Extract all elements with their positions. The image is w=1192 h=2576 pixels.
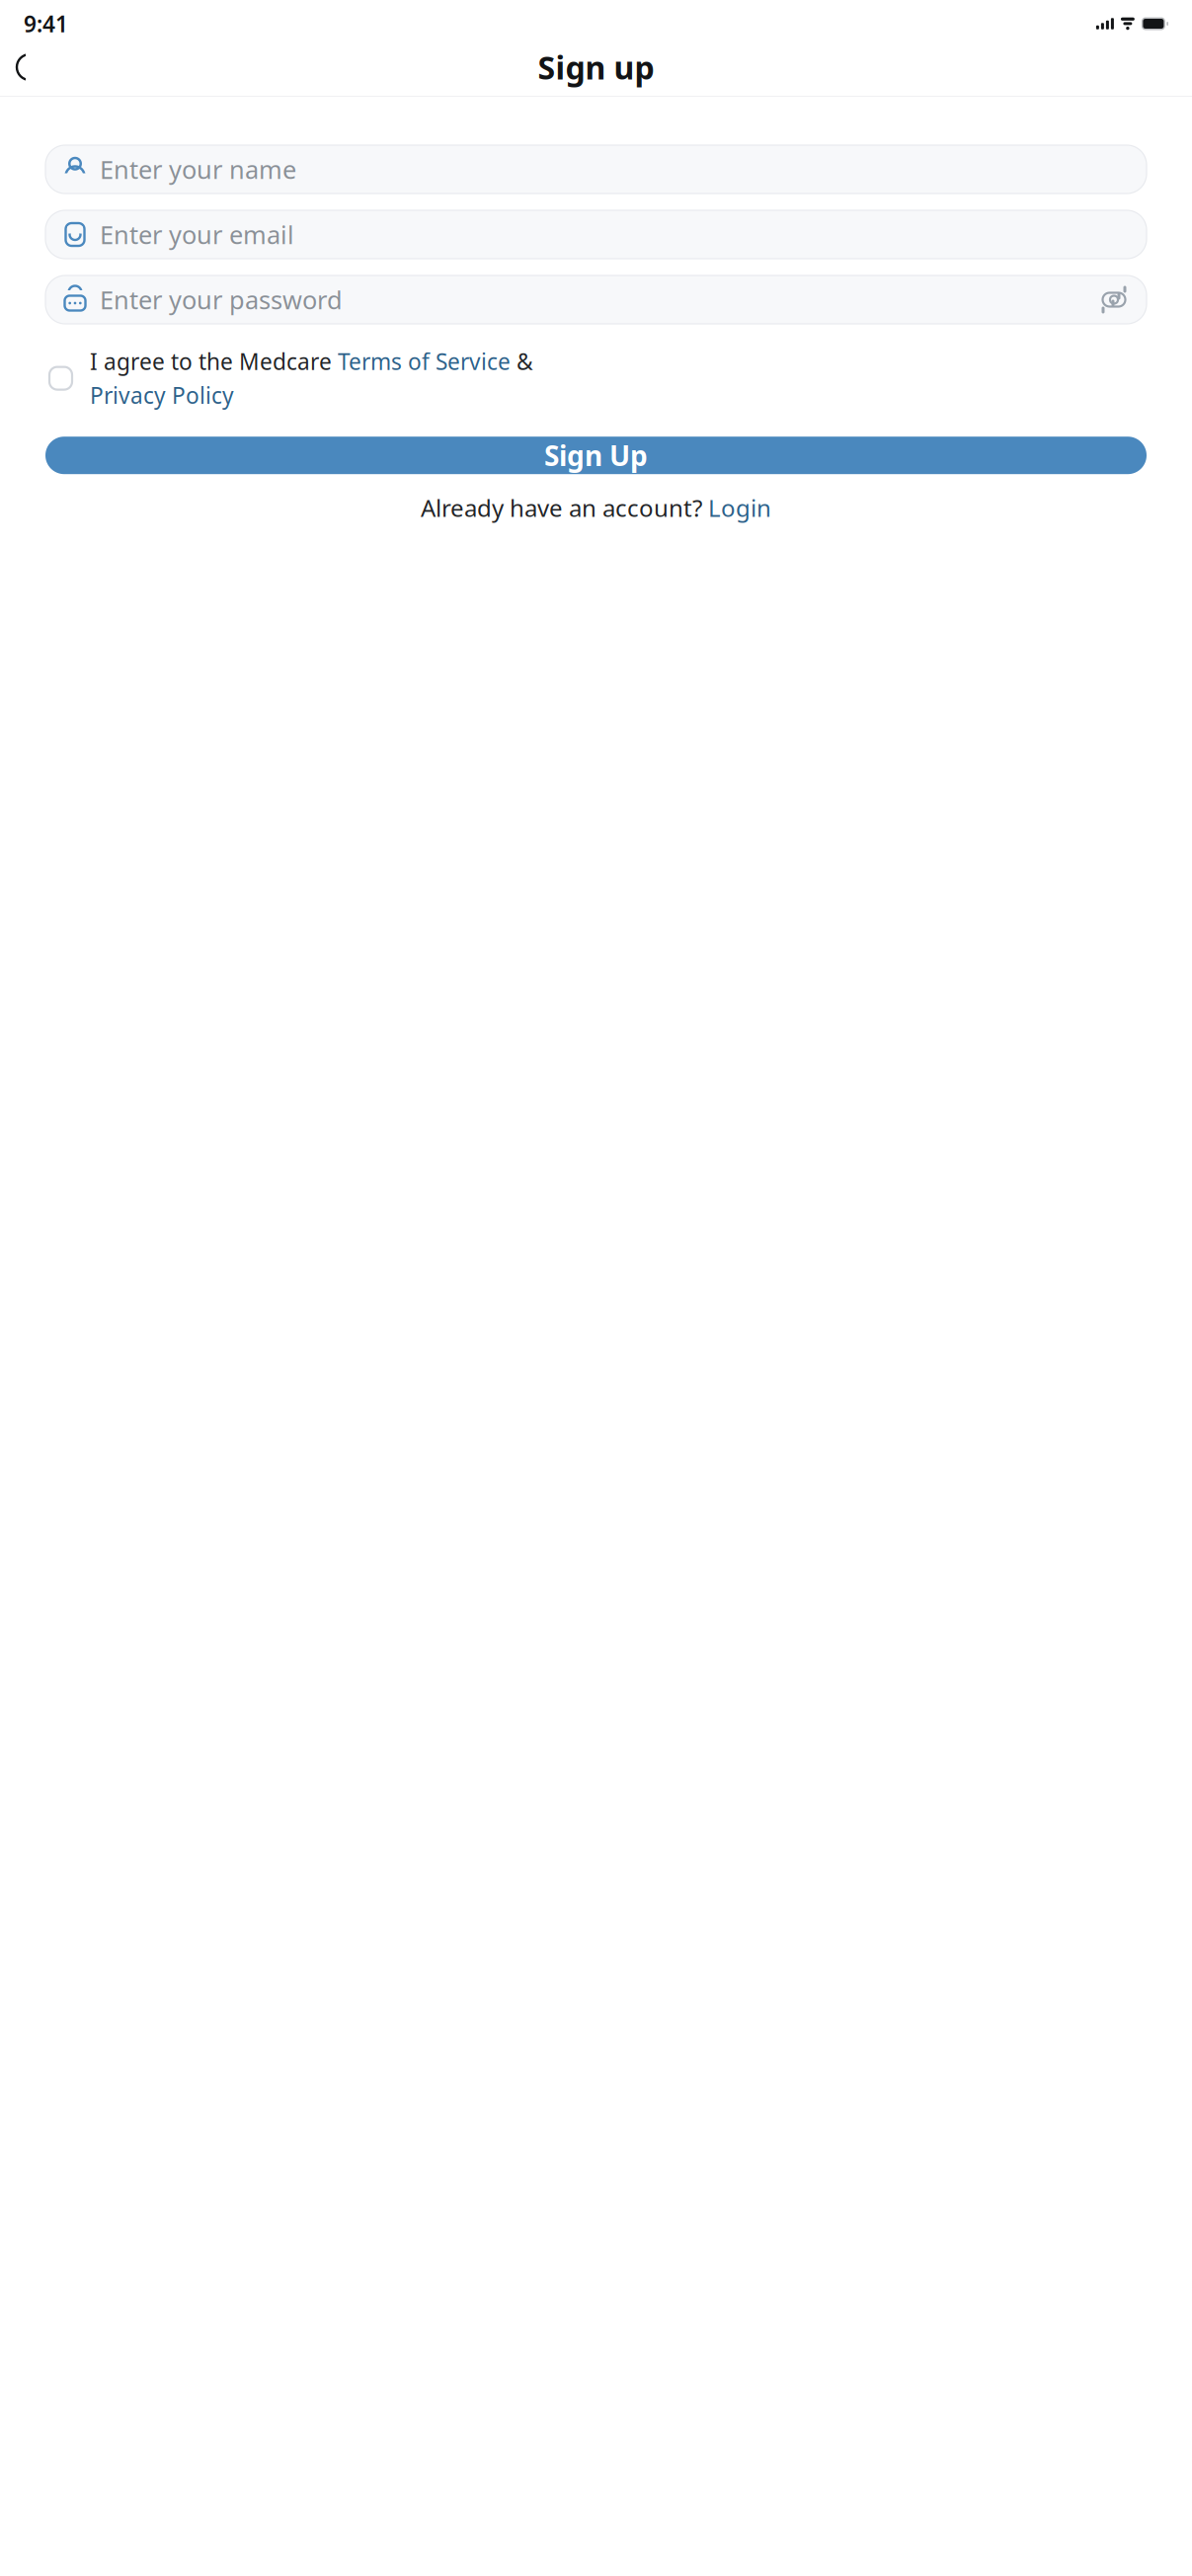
button[interactable]: Enter your name: [45, 145, 1147, 194]
button[interactable]: Already have an account?: [45, 495, 1147, 521]
staticText: Already have an account?: [421, 492, 708, 523]
button[interactable]: Sign Up: [45, 437, 1147, 474]
staticText: Terms of Service: [338, 347, 511, 376]
staticText: 9:41: [24, 9, 68, 39]
button[interactable]: I agree to the terms: [45, 363, 76, 394]
button[interactable]: Terms of Service: [338, 347, 511, 376]
button[interactable]: Back: [8, 44, 51, 90]
staticText: Sign Up: [544, 437, 648, 474]
staticText: Enter your password: [100, 283, 343, 316]
staticText: Sign up: [538, 46, 654, 88]
button[interactable]: Privacy Policy: [90, 380, 234, 410]
button[interactable]: Enter your password: [45, 275, 1147, 324]
staticText: Privacy Policy: [90, 380, 234, 410]
staticText: Enter your email: [100, 218, 294, 251]
button[interactable]: Enter your email: [45, 210, 1147, 259]
staticText: Login: [708, 492, 771, 523]
staticText: &: [511, 347, 533, 376]
staticText: I agree to the Medcare: [90, 347, 338, 376]
staticText: Enter your name: [100, 153, 296, 186]
